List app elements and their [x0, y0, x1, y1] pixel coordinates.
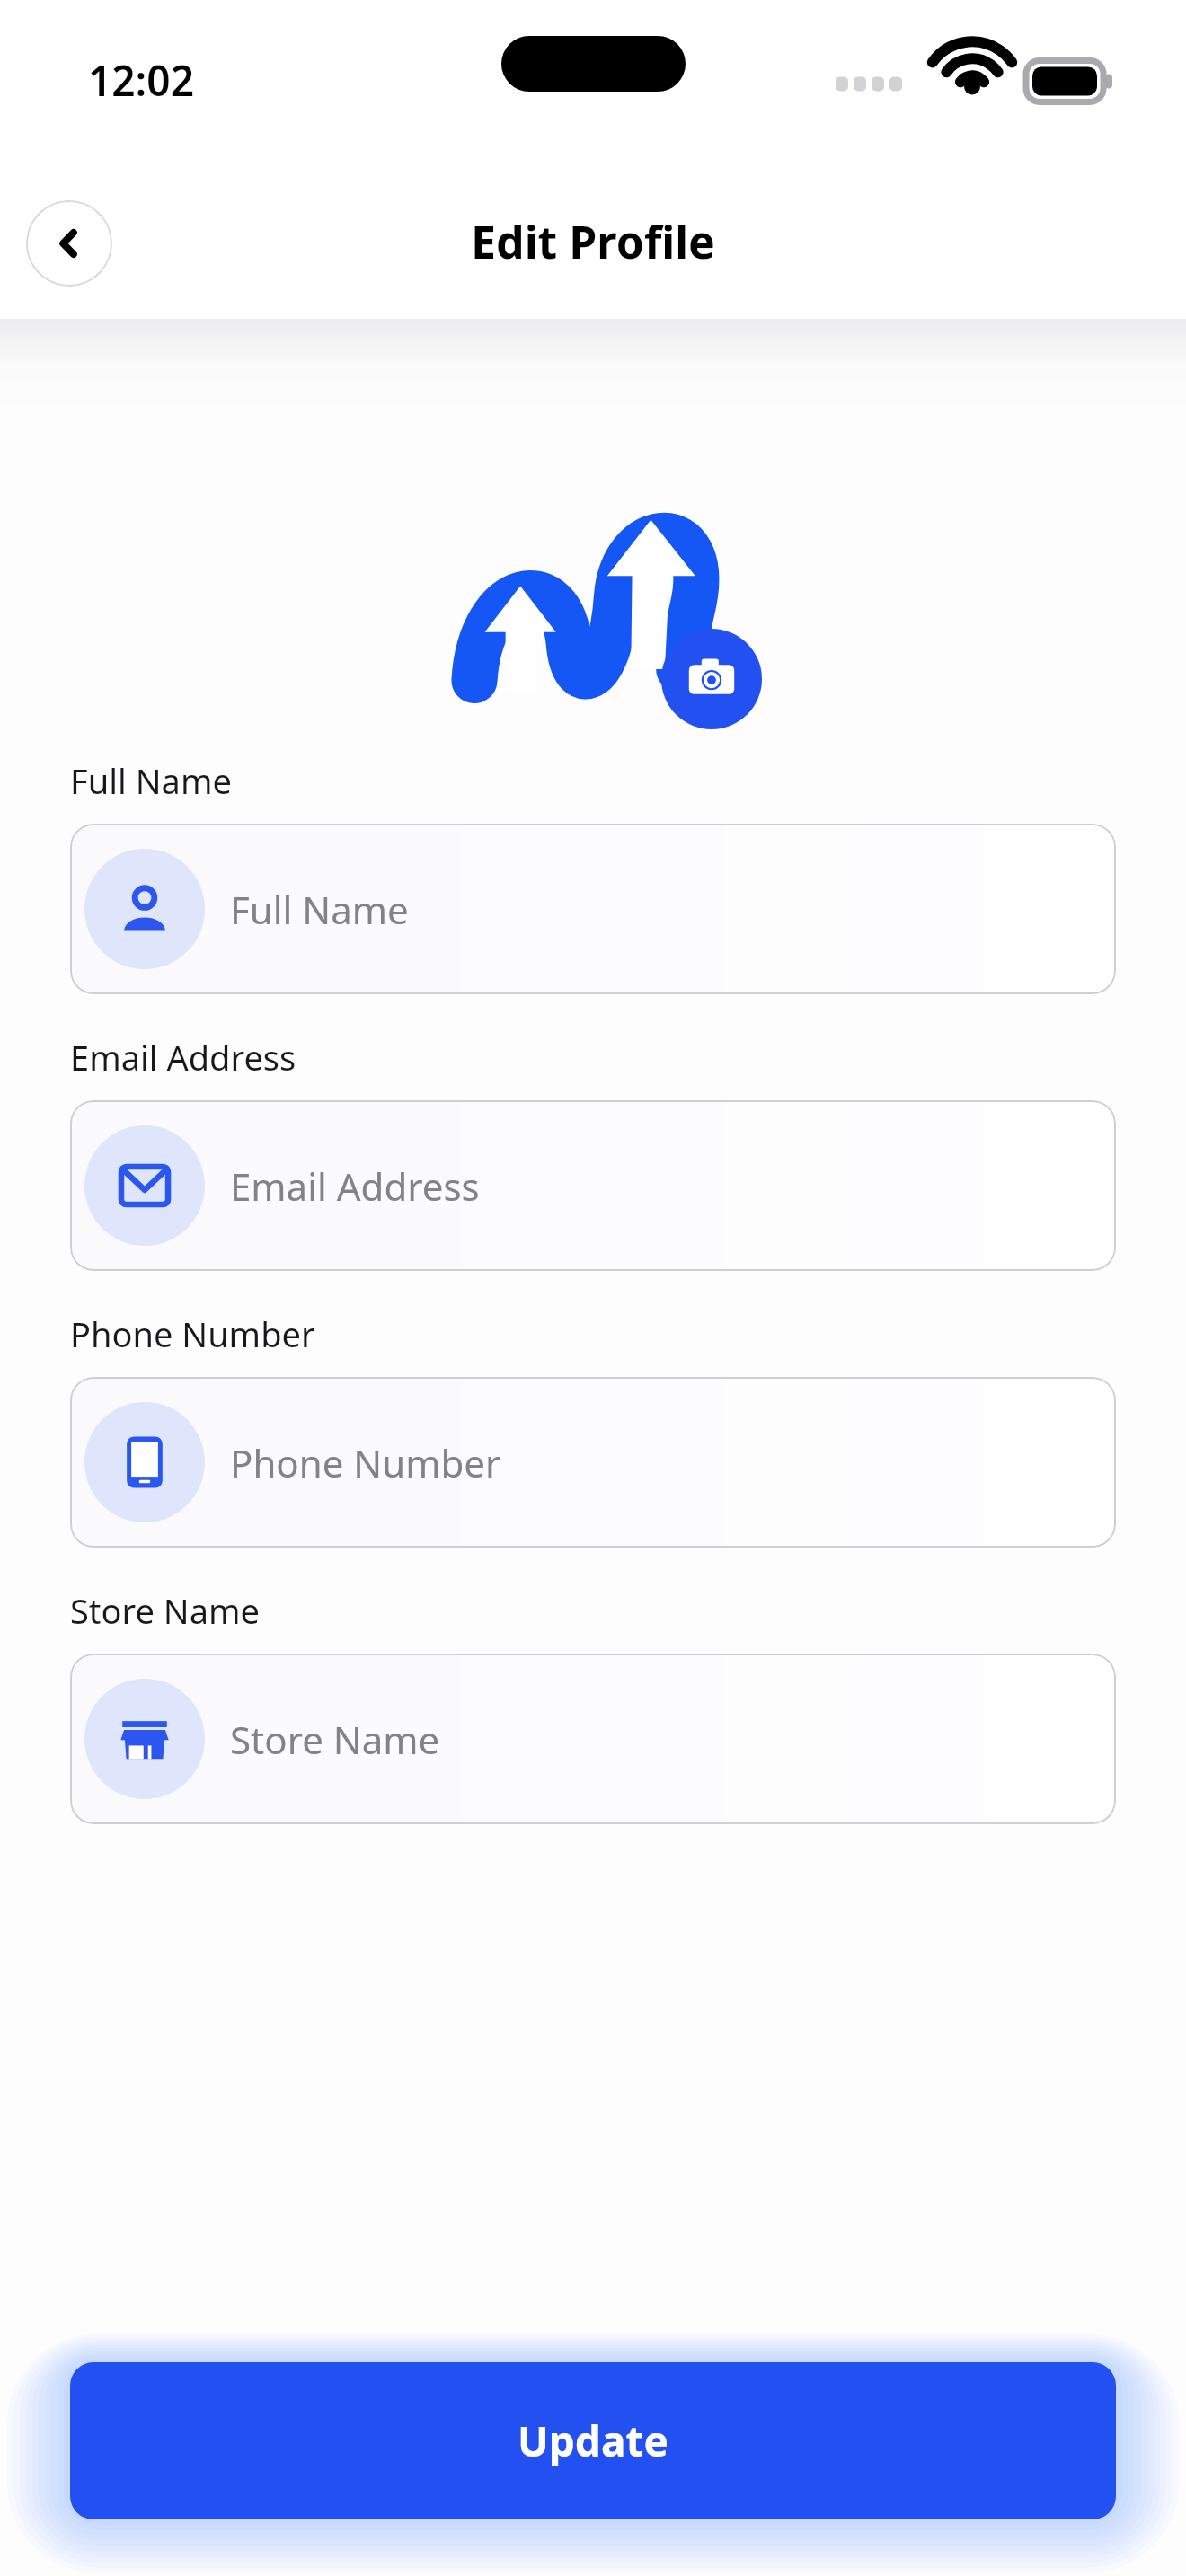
staticText: Email Address	[70, 1034, 296, 1081]
button[interactable]: Store Name	[70, 1654, 1116, 1824]
staticText: Edit Profile	[471, 211, 715, 272]
button[interactable]: Full Name	[70, 824, 1116, 994]
staticText: Store Name	[70, 1587, 260, 1634]
staticText: 12:02	[88, 52, 194, 109]
staticText: Update	[518, 2413, 668, 2469]
button[interactable]: Change photo	[661, 629, 762, 729]
button[interactable]: Back	[26, 200, 112, 287]
staticText: Phone Number	[230, 1437, 501, 1488]
staticText: Store Name	[230, 1714, 440, 1765]
staticText: Email Address	[230, 1160, 480, 1212]
button[interactable]: Phone Number	[70, 1377, 1116, 1548]
staticText: Phone Number	[70, 1310, 315, 1357]
staticText: Full Name	[230, 884, 409, 935]
button[interactable]: Email Address	[70, 1100, 1116, 1271]
staticText: Full Name	[70, 757, 232, 804]
button[interactable]: Update	[70, 2362, 1116, 2519]
